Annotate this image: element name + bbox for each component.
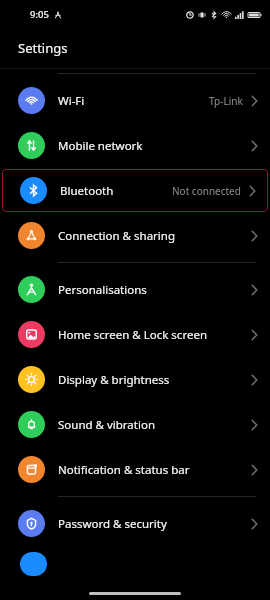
staticText: Display & brightness — [58, 372, 170, 388]
button[interactable]: Bluetooth — [0, 168, 270, 213]
button[interactable]: Wi-Fi — [0, 78, 270, 123]
button[interactable]: Personalisations — [0, 267, 270, 312]
staticText: Sound & vibration — [58, 417, 155, 433]
button[interactable]: Mobile network — [0, 123, 270, 168]
staticText: Personalisations — [58, 282, 147, 298]
staticText: Connection & sharing — [58, 228, 175, 244]
staticText: Settings — [18, 39, 68, 57]
staticText: Tp-Link — [209, 94, 243, 108]
button[interactable]: Home screen & Lock screen — [0, 312, 270, 357]
button[interactable] — [0, 546, 270, 576]
staticText: Home screen & Lock screen — [58, 327, 207, 343]
button[interactable]: Connection & sharing — [0, 213, 270, 258]
button[interactable]: Password & security — [0, 501, 270, 546]
button[interactable]: Display & brightness — [0, 357, 270, 402]
staticText: Bluetooth — [60, 183, 114, 199]
button[interactable]: Sound & vibration — [0, 402, 270, 447]
staticText: Notification & status bar — [58, 462, 190, 478]
staticText: Wi-Fi — [58, 93, 85, 109]
staticText: 9:05 — [30, 8, 49, 21]
staticText: Mobile network — [58, 138, 143, 154]
button[interactable]: Notification & status bar — [0, 447, 270, 492]
staticText: Not connected — [172, 184, 241, 198]
staticText: Password & security — [58, 516, 167, 532]
